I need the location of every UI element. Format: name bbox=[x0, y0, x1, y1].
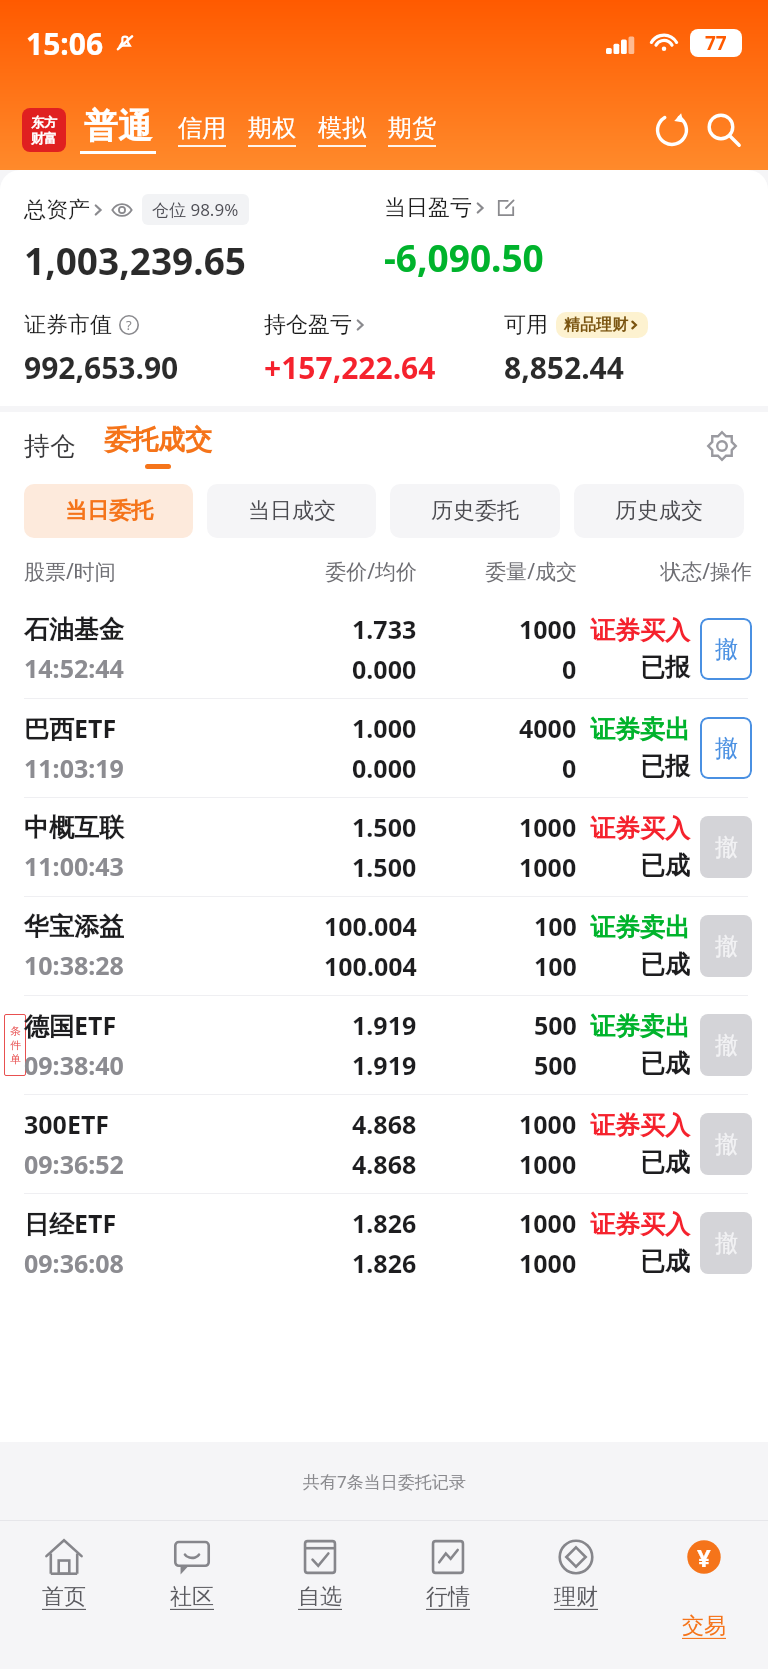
staticText: +157,222.64 bbox=[264, 347, 436, 388]
button[interactable]: 期货 bbox=[388, 113, 436, 143]
staticText: 11:03:19 bbox=[24, 751, 124, 785]
staticText: 1.826 bbox=[352, 1246, 417, 1280]
staticText: 撤 bbox=[715, 635, 738, 664]
staticText: 撤 bbox=[715, 1229, 738, 1258]
staticText: 1,003,239.65 bbox=[24, 235, 246, 285]
staticText: 14:52:44 bbox=[24, 651, 124, 685]
staticText: 自选 bbox=[298, 1583, 342, 1611]
staticText: 总资产 bbox=[24, 196, 90, 224]
staticText: 证券买入 bbox=[590, 615, 690, 646]
staticText: 单 bbox=[10, 1052, 21, 1066]
staticText: 100 bbox=[534, 949, 577, 983]
button[interactable]: 条 bbox=[0, 996, 768, 1094]
staticText: 已成 bbox=[640, 1147, 690, 1178]
button[interactable]: Search bbox=[702, 108, 746, 152]
staticText: 1000 bbox=[519, 810, 577, 844]
staticText: 1000 bbox=[519, 1147, 577, 1181]
staticText: 0.000 bbox=[352, 652, 417, 686]
staticText: 财富 bbox=[31, 130, 57, 146]
staticText: ? bbox=[126, 316, 132, 334]
button[interactable]: 仓位 98.9% bbox=[152, 198, 239, 221]
staticText: 已成 bbox=[640, 1246, 690, 1277]
button[interactable]: Open detail bbox=[494, 196, 518, 220]
staticText: 证券买入 bbox=[590, 1209, 690, 1240]
button[interactable]: 普通 bbox=[84, 105, 152, 148]
staticText: 证券卖出 bbox=[590, 714, 690, 745]
staticText: 09:36:08 bbox=[24, 1246, 124, 1280]
staticText: 精品理财 bbox=[564, 315, 628, 335]
button[interactable]: 巴西ETF bbox=[0, 699, 768, 797]
button[interactable]: 撤 bbox=[700, 1014, 752, 1076]
button[interactable]: 中概互联 bbox=[0, 798, 768, 896]
staticText: 已成 bbox=[640, 1048, 690, 1079]
staticText: 8,852.44 bbox=[504, 347, 624, 388]
button[interactable]: 社区 bbox=[128, 1521, 256, 1669]
button[interactable]: 撤 bbox=[700, 816, 752, 878]
staticText: 撤 bbox=[715, 734, 738, 763]
button[interactable]: Refresh bbox=[650, 108, 694, 152]
button[interactable]: 行情 bbox=[384, 1521, 512, 1669]
staticText: 首页 bbox=[42, 1583, 86, 1611]
staticText: 当日成交 bbox=[248, 497, 336, 525]
staticText: 行情 bbox=[426, 1583, 470, 1611]
staticText: 东方 bbox=[31, 114, 57, 130]
button[interactable]: 精品理财 bbox=[564, 315, 640, 335]
staticText: 992,653.90 bbox=[24, 347, 179, 388]
staticText: 500 bbox=[534, 1008, 577, 1042]
staticText: 当日委托 bbox=[65, 497, 153, 525]
staticText: 已成 bbox=[640, 850, 690, 881]
button[interactable]: ¥ bbox=[640, 1521, 768, 1669]
staticText: 证券买入 bbox=[590, 813, 690, 844]
staticText: 1000 bbox=[519, 1107, 577, 1141]
staticText: 1.733 bbox=[352, 612, 417, 646]
button[interactable]: 撤 bbox=[700, 1212, 752, 1274]
staticText: 77 bbox=[705, 30, 727, 56]
button[interactable]: Settings bbox=[700, 424, 744, 468]
staticText: 撤 bbox=[715, 1130, 738, 1159]
staticText: 撤 bbox=[715, 833, 738, 862]
staticText: 华宝添益 bbox=[24, 911, 124, 942]
staticText: 日经ETF bbox=[24, 1206, 117, 1240]
button[interactable]: 当日委托 bbox=[24, 484, 193, 538]
button[interactable]: Toggle visibility bbox=[110, 198, 134, 222]
staticText: 状态/操作 bbox=[577, 557, 752, 586]
button[interactable]: 自选 bbox=[256, 1521, 384, 1669]
button[interactable]: 首页 bbox=[0, 1521, 128, 1669]
button[interactable]: 当日成交 bbox=[207, 484, 376, 538]
staticText: 中概互联 bbox=[24, 812, 124, 843]
button[interactable]: 持仓 bbox=[24, 430, 88, 463]
button[interactable]: 300ETF bbox=[0, 1095, 768, 1193]
staticText: 历史委托 bbox=[431, 497, 519, 525]
staticText: 0 bbox=[562, 751, 577, 785]
button[interactable]: 撤 bbox=[700, 717, 752, 779]
button[interactable]: 华宝添益 bbox=[0, 897, 768, 995]
staticText: 500 bbox=[534, 1048, 577, 1082]
button[interactable]: 撤 bbox=[700, 1113, 752, 1175]
staticText: 0 bbox=[562, 652, 577, 686]
staticText: 持仓 bbox=[24, 430, 76, 463]
button[interactable]: 期权 bbox=[248, 113, 296, 143]
staticText: 已报 bbox=[640, 652, 690, 683]
button[interactable]: 模拟 bbox=[318, 113, 366, 143]
staticText: 1.919 bbox=[352, 1048, 417, 1082]
button[interactable]: Help bbox=[118, 314, 140, 336]
staticText: 证券卖出 bbox=[590, 912, 690, 943]
staticText: 已成 bbox=[640, 949, 690, 980]
button[interactable]: 历史成交 bbox=[574, 484, 744, 538]
staticText: 委托成交 bbox=[104, 423, 212, 457]
staticText: 11:00:43 bbox=[24, 849, 124, 883]
staticText: 委量/成交 bbox=[417, 557, 577, 586]
button[interactable]: 日经ETF bbox=[0, 1194, 768, 1292]
button[interactable]: 撤 bbox=[700, 915, 752, 977]
button[interactable]: 撤 bbox=[700, 618, 752, 680]
staticText: 09:36:52 bbox=[24, 1147, 124, 1181]
button[interactable]: 历史委托 bbox=[390, 484, 560, 538]
button[interactable]: 信用 bbox=[178, 113, 226, 143]
staticText: 1000 bbox=[519, 850, 577, 884]
button[interactable]: 理财 bbox=[512, 1521, 640, 1669]
button[interactable]: 委托成交 bbox=[104, 423, 212, 469]
staticText: ¥ bbox=[697, 1541, 711, 1574]
button[interactable]: 石油基金 bbox=[0, 600, 768, 698]
staticText: 已报 bbox=[640, 751, 690, 782]
staticText: 件 bbox=[10, 1038, 21, 1052]
